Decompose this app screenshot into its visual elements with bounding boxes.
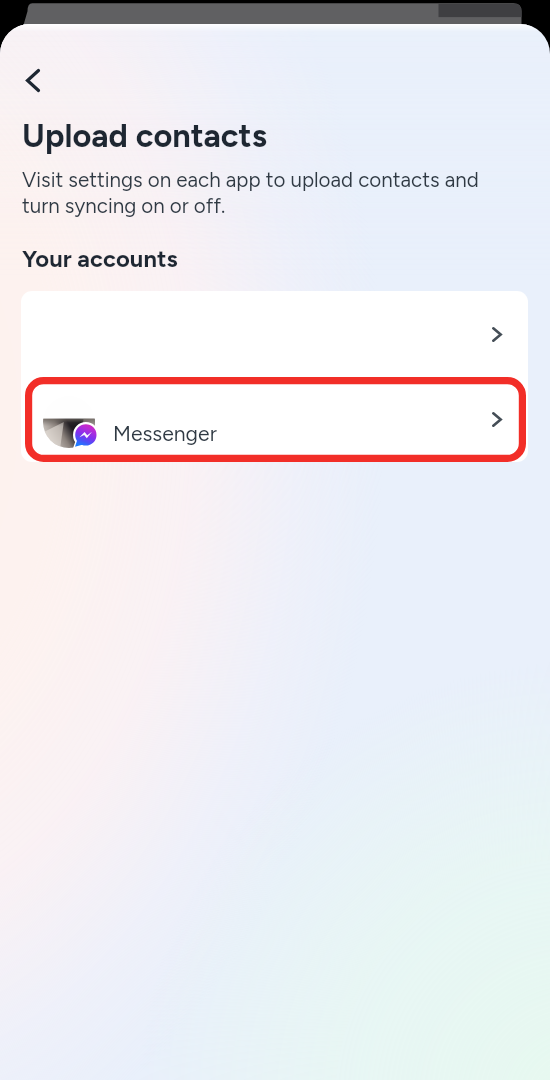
button[interactable]: Back: [11, 58, 55, 102]
button[interactable]: Messenger: [21, 376, 528, 461]
staticText: Upload contacts: [22, 116, 267, 155]
staticText: Messenger: [113, 421, 217, 446]
button[interactable]: [21, 291, 528, 376]
staticText: Your accounts: [22, 244, 178, 273]
staticText: Visit settings on each app to upload con…: [22, 167, 492, 218]
